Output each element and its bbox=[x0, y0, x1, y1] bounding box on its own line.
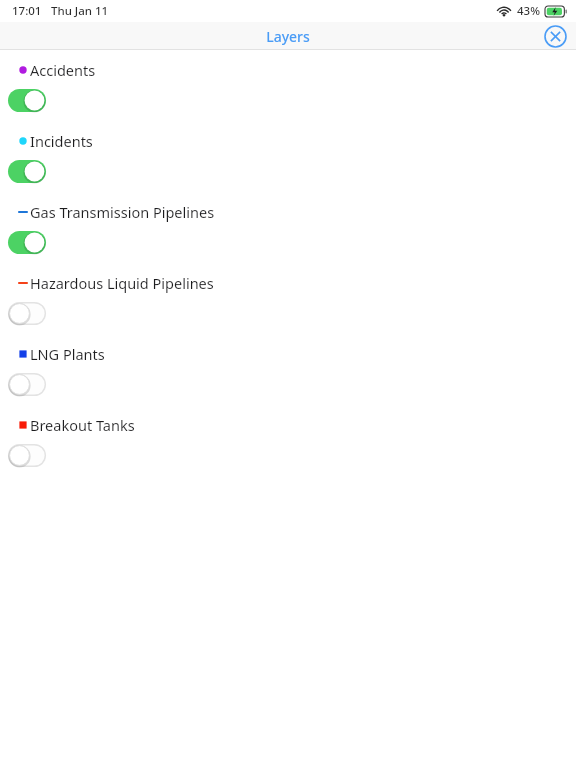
button[interactable]: Hazardous Liquid Pipelines bbox=[0, 270, 576, 341]
button[interactable]: Toggle off bbox=[8, 302, 46, 325]
button[interactable]: Toggle off bbox=[8, 444, 46, 467]
staticText: 43% bbox=[517, 3, 540, 19]
button[interactable]: Gas Transmission Pipelines bbox=[0, 199, 576, 270]
button[interactable]: Toggle on bbox=[8, 231, 46, 254]
staticText: LNG Plants bbox=[30, 344, 105, 364]
staticText: Thu Jan 11 bbox=[51, 3, 109, 19]
staticText: Gas Transmission Pipelines bbox=[30, 202, 215, 222]
staticText: Layers bbox=[266, 27, 310, 46]
button[interactable]: Incidents bbox=[0, 128, 576, 199]
button[interactable]: Toggle on bbox=[8, 160, 46, 183]
staticText: Breakout Tanks bbox=[30, 415, 135, 435]
button[interactable]: Close bbox=[540, 22, 570, 50]
button[interactable]: Toggle off bbox=[8, 373, 46, 396]
button[interactable]: Toggle on bbox=[8, 89, 46, 112]
button[interactable]: LNG Plants bbox=[0, 341, 576, 412]
staticText: Incidents bbox=[30, 131, 93, 151]
staticText: 17:01 bbox=[12, 3, 42, 19]
staticText: Hazardous Liquid Pipelines bbox=[30, 273, 214, 293]
button[interactable]: Accidents bbox=[0, 57, 576, 128]
staticText: Accidents bbox=[30, 60, 96, 80]
button[interactable]: Breakout Tanks bbox=[0, 412, 576, 483]
